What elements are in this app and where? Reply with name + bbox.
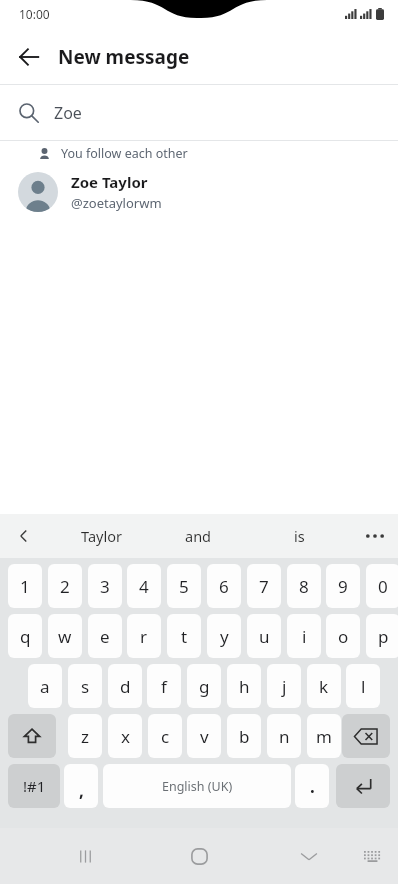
staticText: d — [120, 675, 131, 698]
staticText: 10:00 — [19, 6, 50, 22]
staticText: , — [79, 779, 84, 802]
staticText: and — [185, 526, 212, 546]
button[interactable]: Change keyboard — [346, 830, 398, 882]
button[interactable]: f — [147, 664, 181, 708]
button[interactable]: . — [295, 764, 329, 808]
button[interactable]: d — [108, 664, 142, 708]
staticText: 4 — [139, 575, 149, 598]
button[interactable]: q — [8, 614, 42, 658]
staticText: r — [140, 625, 148, 648]
button[interactable]: 2 — [48, 564, 82, 608]
button[interactable]: y — [207, 614, 241, 658]
button[interactable]: English (UK) — [103, 764, 291, 808]
button[interactable]: n — [267, 714, 301, 758]
staticText: g — [199, 675, 210, 698]
button[interactable]: 7 — [247, 564, 281, 608]
staticText: t — [181, 625, 188, 648]
button[interactable]: 6 — [207, 564, 241, 608]
staticText: w — [58, 625, 72, 648]
staticText: . — [310, 775, 315, 798]
staticText: h — [239, 675, 250, 698]
staticText: Zoe — [54, 102, 82, 124]
button[interactable]: j — [267, 664, 301, 708]
staticText: q — [20, 625, 31, 648]
button[interactable]: More options — [352, 514, 398, 558]
button[interactable]: 0 — [366, 564, 398, 608]
button[interactable]: 3 — [88, 564, 122, 608]
staticText: i — [302, 625, 307, 648]
staticText: is — [294, 526, 305, 546]
button[interactable]: i — [287, 614, 321, 658]
staticText: c — [161, 725, 170, 748]
button[interactable]: g — [187, 664, 221, 708]
staticText: e — [100, 625, 110, 648]
button[interactable]: r — [127, 614, 161, 658]
button[interactable]: , — [64, 764, 98, 808]
staticText: x — [121, 725, 130, 748]
staticText: p — [378, 625, 389, 648]
staticText: 8 — [299, 575, 309, 598]
button[interactable]: 9 — [326, 564, 360, 608]
button[interactable]: m — [307, 714, 341, 758]
button[interactable]: 1 — [8, 564, 42, 608]
button[interactable]: x — [108, 714, 142, 758]
staticText: o — [338, 625, 349, 648]
button[interactable]: Enter — [336, 764, 390, 808]
button[interactable]: b — [227, 714, 261, 758]
button[interactable]: l — [346, 664, 380, 708]
staticText: English (UK) — [162, 778, 233, 795]
button[interactable]: Shift — [8, 714, 56, 758]
button[interactable]: c — [148, 714, 182, 758]
staticText: f — [161, 675, 167, 698]
button[interactable]: is — [256, 514, 342, 558]
button[interactable]: Back — [0, 30, 58, 84]
button[interactable]: Hide keyboard — [281, 828, 337, 884]
staticText: l — [361, 675, 366, 698]
button[interactable]: !#1 — [8, 764, 60, 808]
staticText: s — [81, 675, 90, 698]
button[interactable]: o — [326, 614, 360, 658]
button[interactable]: 5 — [167, 564, 201, 608]
button[interactable]: Zoe — [0, 85, 398, 140]
button[interactable]: t — [167, 614, 201, 658]
button[interactable]: z — [68, 714, 102, 758]
staticText: v — [200, 725, 209, 748]
staticText: You follow each other — [61, 145, 188, 162]
staticText: !#1 — [23, 776, 46, 796]
staticText: 5 — [179, 575, 189, 598]
button[interactable]: s — [68, 664, 102, 708]
button[interactable]: w — [48, 614, 82, 658]
button[interactable]: Recents — [57, 828, 113, 884]
staticText: 6 — [219, 575, 229, 598]
staticText: 9 — [338, 575, 348, 598]
button[interactable]: a — [28, 664, 62, 708]
staticText: 7 — [259, 575, 269, 598]
button[interactable]: 4 — [127, 564, 161, 608]
button[interactable]: 8 — [287, 564, 321, 608]
staticText: 3 — [100, 575, 110, 598]
staticText: Taylor — [81, 526, 122, 546]
staticText: 1 — [20, 575, 30, 598]
staticText: Zoe Taylor — [71, 172, 148, 192]
button[interactable]: Previous suggestions — [0, 514, 48, 558]
staticText: m — [316, 725, 332, 748]
button[interactable]: Home — [171, 828, 227, 884]
button[interactable]: Backspace — [342, 714, 390, 758]
button[interactable]: u — [247, 614, 281, 658]
button[interactable]: Taylor — [58, 514, 144, 558]
staticText: y — [220, 625, 229, 648]
staticText: @zoetaylorwm — [71, 194, 162, 212]
button[interactable]: Zoe Taylor — [0, 166, 398, 218]
staticText: u — [259, 625, 270, 648]
staticText: 0 — [378, 575, 388, 598]
button[interactable]: v — [187, 714, 221, 758]
staticText: 2 — [60, 575, 70, 598]
button[interactable]: p — [366, 614, 398, 658]
button[interactable]: k — [307, 664, 341, 708]
staticText: n — [279, 725, 290, 748]
staticText: j — [282, 675, 287, 698]
staticText: b — [239, 725, 250, 748]
button[interactable]: h — [227, 664, 261, 708]
button[interactable]: e — [88, 614, 122, 658]
button[interactable]: and — [155, 514, 241, 558]
